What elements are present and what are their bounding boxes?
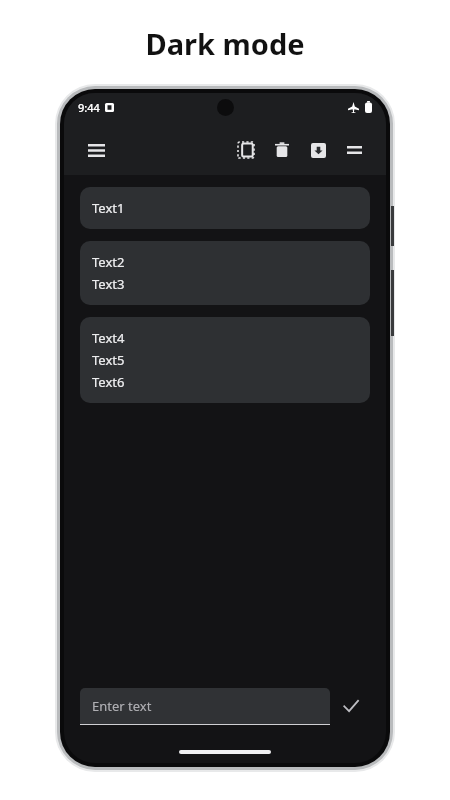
button[interactable]: Submit xyxy=(330,685,372,727)
button[interactable]: Select xyxy=(228,132,264,168)
button[interactable]: Delete xyxy=(264,132,300,168)
staticText: Text5 xyxy=(92,351,125,369)
staticText: 9:44 xyxy=(78,100,100,115)
staticText: Enter text xyxy=(92,697,152,715)
staticText: Text2 xyxy=(92,253,125,271)
button[interactable]: More xyxy=(336,132,372,168)
staticText: Text6 xyxy=(92,373,125,391)
button[interactable]: Save xyxy=(300,132,336,168)
button[interactable]: Enter text xyxy=(80,688,330,725)
button[interactable]: Text1 xyxy=(80,187,370,229)
staticText: Text1 xyxy=(92,199,125,217)
button[interactable]: Text2 xyxy=(80,241,370,305)
staticText: Dark mode xyxy=(0,24,450,63)
button[interactable]: Text4 xyxy=(80,317,370,403)
button[interactable]: Menu xyxy=(78,132,114,168)
staticText: Text4 xyxy=(92,329,125,347)
staticText: Text3 xyxy=(92,275,125,293)
